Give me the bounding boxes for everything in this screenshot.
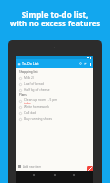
staticText: Write homework [24,105,49,109]
button[interactable]: Half kg of cheese [16,87,93,93]
button[interactable]: Menu [17,62,21,66]
staticText: Simple to-do list, [0,9,110,20]
staticText: Loaf of bread [24,82,44,86]
staticText: with no excess features [0,18,110,28]
staticText: Clean up room - 5 pm [24,98,58,102]
staticText: Milk 2l [24,76,34,80]
button[interactable]: Write homework [16,104,93,110]
button[interactable]: Clean up room - 5 pm [16,98,93,104]
staticText: Plans [19,93,27,97]
staticText: To-Do List [22,61,39,66]
staticText: Half kg of cheese [24,88,50,92]
button[interactable]: Call dad [16,110,93,116]
button[interactable]: Loaf of bread [16,81,93,87]
button[interactable]: Buy running shoes [16,116,93,122]
button[interactable]: Add new item [16,163,93,170]
staticText: Buy running shoes [24,117,53,121]
button[interactable]: Search [79,62,82,65]
staticText: Add new item [23,165,42,169]
button[interactable]: Sort [84,62,87,65]
button[interactable]: More options [89,62,91,66]
button[interactable]: Milk 2l [16,75,93,81]
staticText: Call dad [24,111,36,115]
button[interactable]: Add item [87,166,93,172]
staticText: today [24,102,31,104]
staticText: Shopping list [19,70,38,74]
